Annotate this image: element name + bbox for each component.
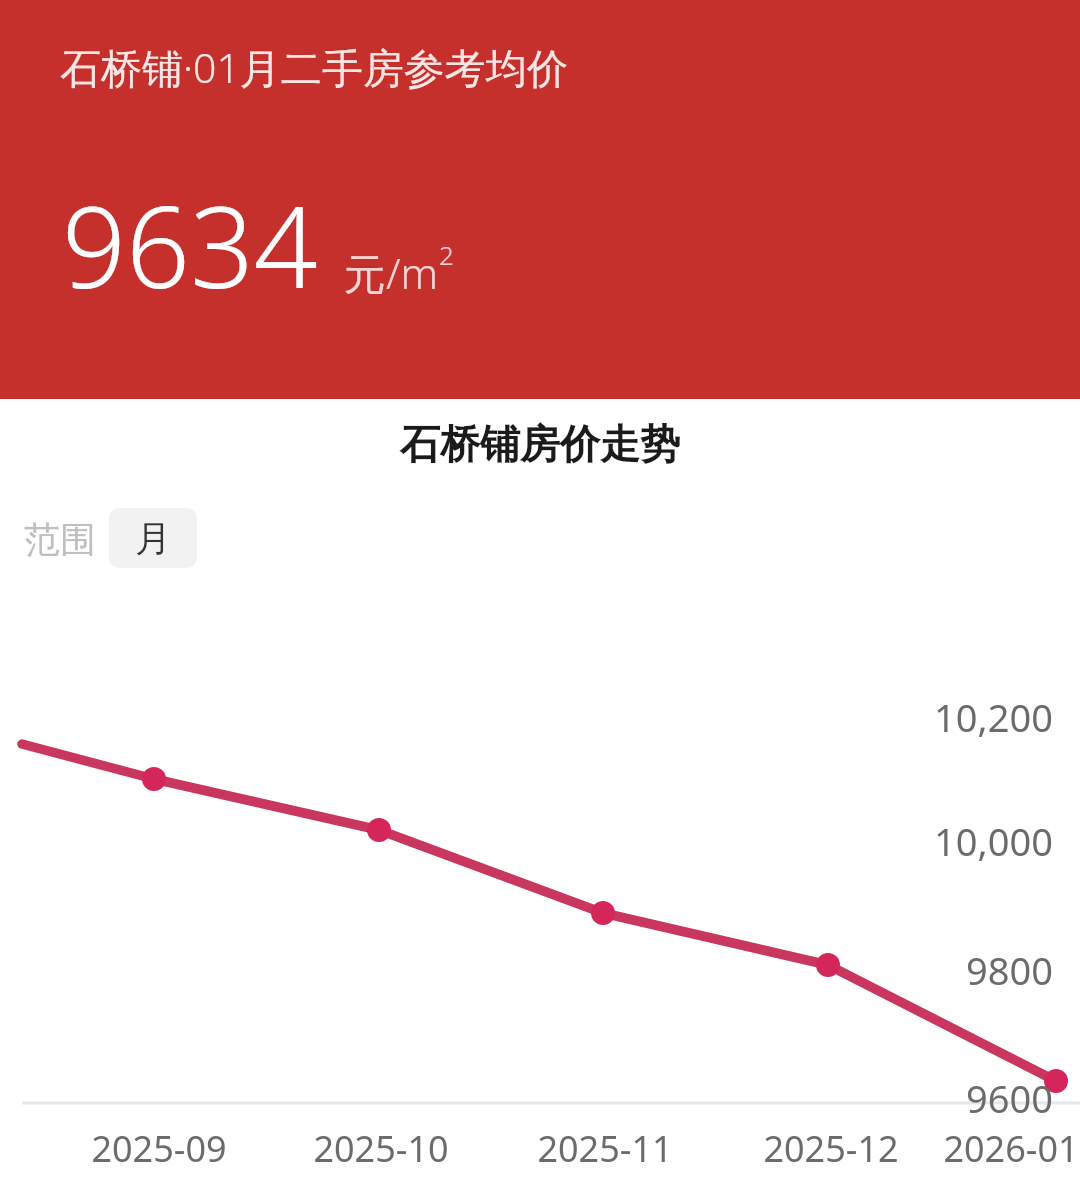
staticText: 2025-12 [763,1124,899,1173]
staticText: 9600 [966,1072,1053,1124]
staticText: 石桥铺·01月二手房参考均价 [60,39,568,95]
staticText: 10,000 [934,815,1053,867]
staticText: 2026-01 [943,1124,1079,1173]
staticText: 元/m [344,244,439,301]
staticText: 范围 [24,517,96,562]
staticText: 2025-11 [537,1124,673,1173]
other: 石桥铺房价走势折线图 [0,0,1080,1180]
staticText: 石桥铺房价走势 [400,419,680,469]
staticText: 月 [135,516,171,561]
staticText: 2025-10 [313,1124,449,1173]
staticText: 9634 [62,168,318,321]
staticText: 2025-09 [91,1124,227,1173]
staticText: 10,200 [934,691,1053,743]
staticText: 9800 [966,944,1053,996]
button[interactable]: 月 [109,508,197,568]
staticText: 2 [439,237,454,272]
